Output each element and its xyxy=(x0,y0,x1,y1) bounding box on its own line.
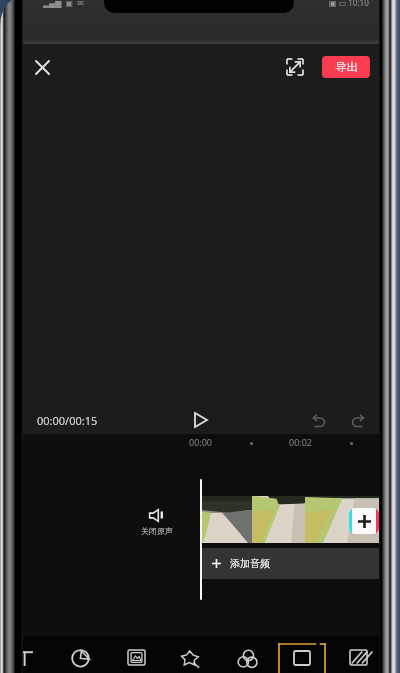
button[interactable]: Edit xyxy=(0,636,52,673)
button[interactable]: Canvas xyxy=(275,636,329,673)
staticText: 关闭原声 xyxy=(141,526,173,536)
button[interactable]: Overlay xyxy=(331,636,385,673)
button[interactable]: 添加音频 xyxy=(202,548,380,579)
button[interactable]: Add clip xyxy=(349,508,379,534)
button[interactable] xyxy=(305,496,380,543)
button[interactable] xyxy=(202,496,252,543)
button[interactable]: Play xyxy=(188,407,214,433)
button[interactable]: Background xyxy=(109,636,163,673)
button[interactable]: Close xyxy=(28,53,56,81)
staticText: ▂▄▆ ▣ ✉ xyxy=(43,0,85,8)
button[interactable]: 关闭原声 xyxy=(134,509,179,536)
staticText: 添加音频 xyxy=(230,557,270,570)
button[interactable] xyxy=(202,496,380,543)
button[interactable]: Filter xyxy=(54,636,108,673)
button[interactable]: 导出 xyxy=(322,56,370,78)
button[interactable]: Effects xyxy=(163,636,217,673)
staticText: 00:02 xyxy=(289,436,313,448)
button[interactable]: Undo xyxy=(305,407,331,433)
button[interactable]: Redo xyxy=(345,407,371,433)
staticText: 00:00 xyxy=(189,436,213,448)
staticText: 00:00/00:15 xyxy=(37,413,98,428)
staticText: 导出 xyxy=(335,60,358,74)
button[interactable]: Full screen xyxy=(281,53,309,81)
staticText: ▣ ▭ 10:10 xyxy=(329,0,369,8)
button[interactable] xyxy=(252,496,305,543)
button[interactable]: Adjust xyxy=(220,636,274,673)
